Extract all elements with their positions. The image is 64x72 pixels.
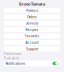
button[interactable]: Recipes [4, 27, 60, 32]
button[interactable]: Notifications [4, 60, 60, 66]
button[interactable]: Favorites [4, 34, 60, 39]
staticText: Notifications [6, 61, 26, 66]
staticText: Preferences [4, 52, 21, 56]
staticText: Recipes [25, 27, 38, 32]
staticText: Delivery [25, 21, 38, 25]
staticText: Orders [27, 15, 37, 19]
button[interactable]: Support [4, 46, 60, 51]
staticText: Support [26, 47, 38, 51]
button[interactable]: Produce [4, 8, 60, 13]
staticText: Produce [25, 8, 38, 13]
staticText: Push alerts [4, 57, 19, 60]
button[interactable]: Account [4, 40, 60, 45]
staticText: Green Tomato [19, 1, 45, 7]
button[interactable]: Orders [4, 14, 60, 19]
staticText: Favorites [24, 34, 39, 38]
staticText: Account [25, 40, 38, 45]
button[interactable]: Delivery [4, 21, 60, 26]
